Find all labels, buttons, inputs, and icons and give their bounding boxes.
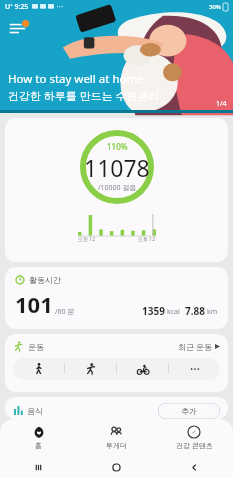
staticText: 추가	[181, 406, 197, 416]
staticText: 건강 콘텐츠	[176, 441, 213, 451]
staticText: 101	[15, 289, 53, 319]
button[interactable]: 홈	[0, 419, 77, 456]
staticText: 1/4	[216, 99, 227, 109]
button[interactable]: 추가	[158, 403, 220, 419]
staticText: km	[207, 307, 218, 317]
button[interactable]: Running	[65, 358, 116, 380]
staticText: 홈	[35, 441, 42, 450]
staticText: 110%	[107, 141, 128, 152]
button[interactable]: Cycling	[117, 358, 168, 380]
button[interactable]: Menu	[8, 18, 30, 40]
staticText: /60 분	[55, 307, 75, 317]
staticText: 30%	[209, 3, 221, 11]
staticText: 오후 12	[138, 236, 156, 243]
staticText: U⁺ 9:25	[5, 2, 29, 12]
staticText: 음식	[27, 406, 43, 416]
button[interactable]: Recents	[0, 456, 77, 478]
staticText: 투게더	[106, 441, 127, 450]
button[interactable]: Walking	[13, 358, 64, 380]
staticText: kcal	[167, 307, 180, 317]
staticText: 건강한 하루를 만드는 수면관리	[8, 88, 160, 103]
button[interactable]: 활동시간	[5, 267, 228, 329]
button[interactable]: Home	[77, 456, 155, 478]
button[interactable]: Back	[155, 456, 233, 478]
staticText: 7.88	[185, 304, 205, 318]
staticText: 1359	[142, 304, 165, 318]
button[interactable]: 투게더	[77, 419, 155, 456]
staticText: ⋯	[56, 3, 63, 11]
staticText: 활동시간	[29, 275, 61, 285]
button[interactable]: 110%	[5, 118, 228, 262]
staticText: 운동	[28, 342, 44, 352]
staticText: /10000 걸음	[98, 183, 137, 193]
staticText: 오전 12	[78, 236, 96, 243]
button[interactable]: 최근 운동	[178, 341, 220, 352]
staticText: 11078	[84, 152, 150, 183]
staticText: 최근 운동	[178, 341, 213, 352]
button[interactable]: 건강 콘텐츠	[155, 419, 233, 456]
button[interactable]: More exercises	[169, 358, 220, 380]
staticText: How to stay well at home	[8, 71, 144, 87]
